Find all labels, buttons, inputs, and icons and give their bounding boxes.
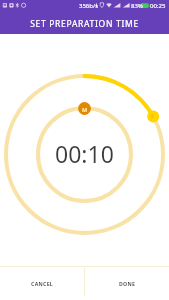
button[interactable]: CANCEL <box>0 267 84 300</box>
staticText: M <box>82 106 88 113</box>
button[interactable]: DONE <box>85 267 169 300</box>
staticText: 00:25 <box>150 2 166 10</box>
staticText: DONE <box>119 280 136 287</box>
staticText: CANCEL <box>31 280 54 287</box>
staticText: 83% <box>131 2 143 10</box>
staticText: 00:10 <box>55 138 114 169</box>
staticText: S <box>151 112 155 119</box>
staticText: SET PREPARATION TIME <box>30 18 139 30</box>
staticText: 356b/s <box>79 2 99 10</box>
